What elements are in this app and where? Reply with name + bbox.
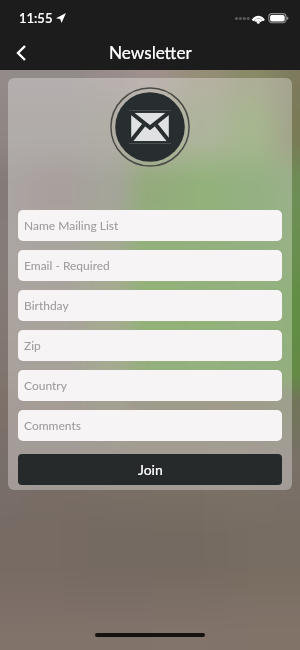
staticText: Country <box>24 378 67 392</box>
button[interactable]: Join <box>18 454 282 485</box>
button[interactable]: Zip <box>18 330 282 361</box>
button[interactable]: Name Mailing List <box>18 210 282 241</box>
staticText: Zip <box>24 338 41 352</box>
staticText: 11:55 <box>19 10 53 26</box>
staticText: Comments <box>24 418 81 432</box>
button[interactable]: Comments <box>18 410 282 441</box>
staticText: Newsletter <box>109 42 192 63</box>
button[interactable]: Email - Required <box>18 250 282 281</box>
staticText: Name Mailing List <box>24 218 119 232</box>
button[interactable]: Back <box>0 36 42 70</box>
staticText: Birthday <box>24 298 69 312</box>
button[interactable]: Country <box>18 370 282 401</box>
staticText: Email - Required <box>24 258 110 272</box>
staticText: Join <box>138 461 163 478</box>
button[interactable]: Birthday <box>18 290 282 321</box>
